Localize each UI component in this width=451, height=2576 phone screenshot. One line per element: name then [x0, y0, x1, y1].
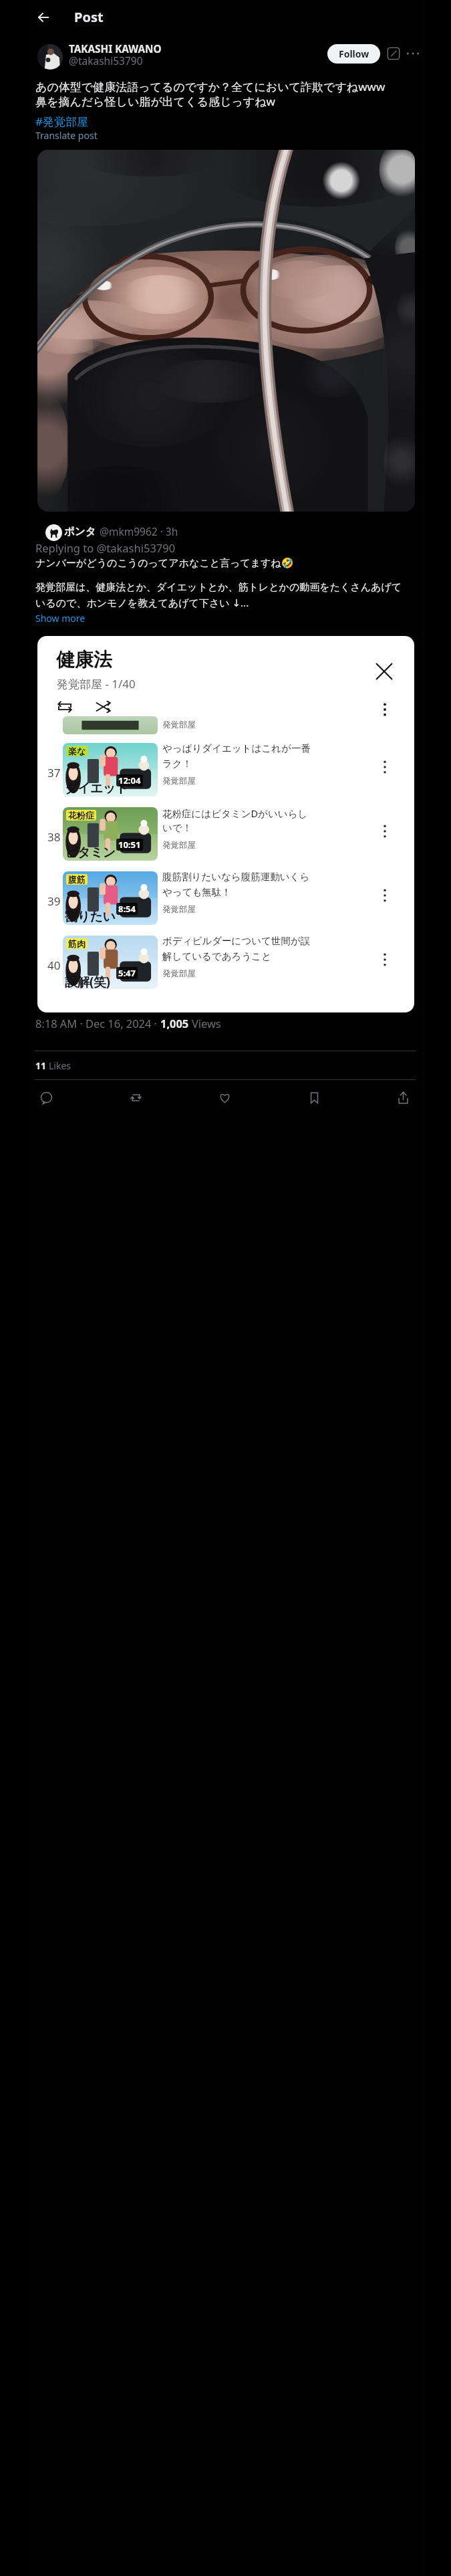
- button[interactable]: Profile photo: [37, 44, 63, 70]
- staticText: 発覚部屋 - 1/40: [57, 676, 136, 691]
- button[interactable]: Follow: [327, 44, 380, 64]
- staticText: 発覚部屋: [162, 840, 196, 851]
- button[interactable]: Translate post: [35, 129, 98, 142]
- staticText: 10:51: [118, 839, 141, 851]
- staticText: 38: [47, 829, 61, 845]
- staticText: 11: [35, 1059, 49, 1072]
- staticText: 8:18 AM · Dec 16, 2024 ·: [35, 1016, 160, 1031]
- button[interactable]: Reply: [31, 1082, 61, 1113]
- staticText: Views: [192, 1016, 221, 1031]
- staticText: 割りたい: [65, 909, 116, 925]
- staticText: 発覚部屋: [162, 776, 196, 786]
- button[interactable]: Repost: [120, 1082, 151, 1113]
- button[interactable]: Video options: [378, 888, 392, 903]
- staticText: 39: [47, 893, 61, 909]
- button[interactable]: Show more: [35, 612, 86, 625]
- staticText: @takashi53790: [69, 53, 143, 68]
- staticText: Follow: [339, 47, 369, 60]
- button[interactable]: Post image: [37, 150, 415, 512]
- button[interactable]: Share: [388, 1082, 418, 1113]
- staticText: 腹筋: [68, 874, 86, 885]
- button[interactable]: Like: [209, 1082, 240, 1113]
- staticText: 12:04: [118, 774, 141, 786]
- staticText: 腹筋割りたいなら腹筋運動いくら: [162, 871, 310, 883]
- staticText: やっぱりダイエットはこれが一番: [162, 742, 311, 754]
- button[interactable]: Grok: [387, 47, 400, 60]
- button[interactable]: 39: [37, 869, 414, 930]
- staticText: 40: [47, 958, 61, 973]
- staticText: 発覚部屋は、健康法とか、ダイエットとか、筋トレとかの動画をたくさんあげているので…: [35, 581, 407, 610]
- staticText: ダイエット: [65, 780, 128, 796]
- staticText: 発覚部屋: [162, 968, 196, 979]
- staticText: Post: [74, 8, 104, 26]
- staticText: 発覚部屋: [162, 720, 196, 730]
- button[interactable]: 健康法: [37, 636, 414, 1012]
- staticText: いで！: [162, 822, 192, 834]
- staticText: 解しているであろうこと: [162, 950, 271, 962]
- button[interactable]: Close: [375, 662, 394, 681]
- staticText: 鼻を摘んだら怪しい脂が出てくる感じっすねw: [35, 94, 275, 109]
- button[interactable]: 40: [37, 934, 414, 994]
- staticText: 1,005: [160, 1016, 192, 1031]
- button[interactable]: Shuffle: [94, 697, 114, 717]
- button[interactable]: 37: [37, 741, 414, 801]
- staticText: ボディビルダーについて世間が誤: [162, 935, 311, 947]
- button[interactable]: Repeat: [55, 697, 75, 717]
- staticText: やっても無駄！: [162, 886, 231, 898]
- staticText: 発覚部屋: [162, 904, 196, 915]
- staticText: 8:54: [118, 903, 136, 915]
- staticText: 花粉症にはビタミンDがいいらし: [162, 807, 308, 820]
- staticText: @mkm9962 · 3h: [100, 524, 178, 538]
- button[interactable]: Video options: [378, 760, 392, 774]
- button[interactable]: More options: [378, 702, 392, 717]
- staticText: 楽な: [68, 746, 86, 756]
- staticText: 筋肉: [68, 938, 86, 949]
- staticText: Replying to @takashi53790: [35, 540, 176, 555]
- staticText: あの体型で健康法語ってるのですか？全てにおいて詐欺ですねwww: [35, 79, 386, 94]
- button[interactable]: Ponta profile photo: [45, 524, 62, 541]
- staticText: 健康法: [56, 648, 112, 671]
- button[interactable]: Bookmark: [299, 1082, 329, 1113]
- staticText: ビタミン: [65, 845, 116, 861]
- staticText: 誤解(笑): [65, 973, 110, 989]
- button[interactable]: More: [406, 47, 420, 60]
- staticText: 花粉症: [68, 810, 94, 821]
- button[interactable]: Video options: [378, 824, 392, 839]
- button[interactable]: 38: [37, 805, 414, 865]
- staticText: 37: [47, 765, 61, 780]
- staticText: TAKASHI KAWANO: [69, 42, 162, 56]
- staticText: Likes: [49, 1059, 71, 1072]
- button[interactable]: Back: [30, 4, 57, 31]
- button[interactable]: #発覚部屋: [35, 114, 88, 129]
- staticText: 5:47: [118, 967, 136, 979]
- staticText: ラク！: [162, 758, 192, 770]
- button[interactable]: Video options: [378, 952, 392, 967]
- staticText: ナンバーがどうのこうのってアホなこと言ってますね🤣: [35, 557, 294, 570]
- staticText: ポンタ: [64, 525, 96, 538]
